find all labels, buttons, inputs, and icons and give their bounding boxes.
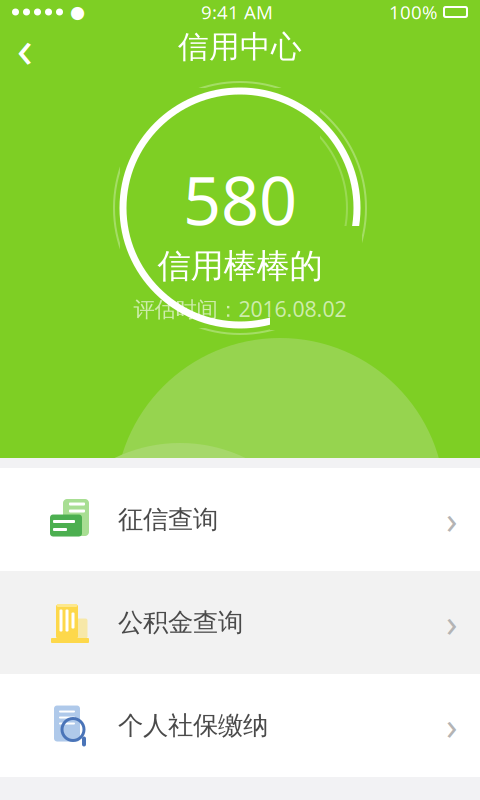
staticText: 信用中心 bbox=[178, 28, 302, 66]
staticText: 公积金查询 bbox=[118, 607, 243, 638]
staticText: 9:41 AM bbox=[201, 0, 273, 24]
staticText: 100% bbox=[389, 0, 438, 24]
staticText: › bbox=[446, 701, 458, 750]
staticText: 评估时间：2016.08.02 bbox=[133, 295, 346, 323]
staticText: 征信查询 bbox=[118, 504, 218, 535]
staticText: › bbox=[446, 495, 458, 544]
staticText: 580 bbox=[183, 155, 297, 244]
staticText: 个人社保缴纳 bbox=[118, 710, 268, 741]
staticText: ‹ bbox=[16, 12, 33, 82]
staticText: › bbox=[446, 598, 458, 647]
button[interactable]: Back bbox=[0, 25, 50, 69]
button[interactable]: 征信查询 bbox=[0, 468, 480, 571]
staticText: 信用棒棒的 bbox=[157, 246, 322, 286]
button[interactable]: 个人社保缴纳 bbox=[0, 674, 480, 777]
button[interactable]: 公积金查询 bbox=[0, 571, 480, 674]
staticText: ● bbox=[70, 2, 85, 22]
